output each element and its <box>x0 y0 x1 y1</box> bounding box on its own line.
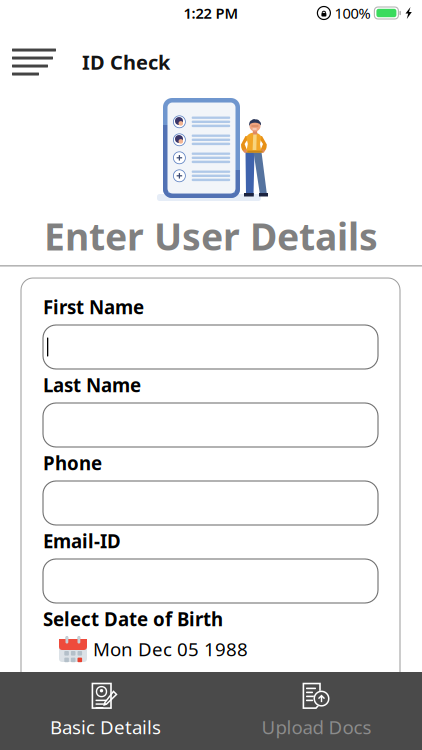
button[interactable]: Menu <box>0 40 68 83</box>
button[interactable] <box>43 325 378 369</box>
button[interactable] <box>43 403 378 447</box>
staticText: Upload Docs <box>261 715 371 739</box>
button[interactable]: Mon Dec 05 1988 <box>43 636 378 662</box>
staticText: Email-ID <box>43 529 121 553</box>
button[interactable]: Upload Docs <box>211 672 422 750</box>
staticText: First Name <box>43 295 144 319</box>
staticText: Mon Dec 05 1988 <box>93 637 248 661</box>
staticText: Select Date of Birth <box>43 607 223 631</box>
staticText: Basic Details <box>50 715 161 739</box>
staticText: 100% <box>334 3 370 23</box>
staticText: ID Check <box>82 49 170 75</box>
staticText: Enter User Details <box>44 211 378 261</box>
button[interactable] <box>43 559 378 603</box>
button[interactable] <box>43 481 378 525</box>
button[interactable]: Basic Details <box>0 672 211 750</box>
staticText: 1:22 PM <box>183 3 238 23</box>
staticText: Phone <box>43 451 102 475</box>
staticText: Last Name <box>43 373 141 397</box>
